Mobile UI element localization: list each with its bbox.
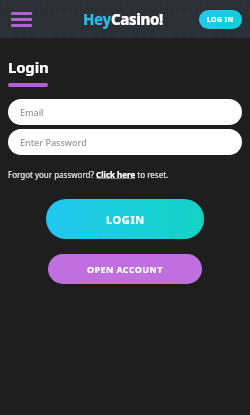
button[interactable]: Enter Password	[8, 129, 242, 155]
button[interactable]: LOGIN	[46, 199, 204, 239]
staticText: Enter Password	[20, 136, 87, 148]
staticText: Email	[20, 106, 44, 118]
button[interactable]: Forgot your password? Click here to rese…	[8, 169, 169, 180]
button[interactable]: Hey	[83, 9, 163, 29]
button[interactable]: Menu	[8, 8, 34, 30]
staticText: LOG IN	[207, 15, 234, 25]
button[interactable]: LOG IN	[199, 10, 242, 29]
staticText: Casino!	[111, 9, 163, 29]
staticText: LOGIN	[106, 212, 145, 227]
staticText: Forgot your password? Click here to rese…	[8, 169, 169, 180]
button[interactable]: Email	[8, 99, 242, 125]
button[interactable]: OPEN ACCOUNT	[48, 254, 202, 284]
staticText: Login	[8, 57, 49, 77]
staticText: Hey	[83, 9, 111, 29]
staticText: OPEN ACCOUNT	[87, 263, 163, 275]
